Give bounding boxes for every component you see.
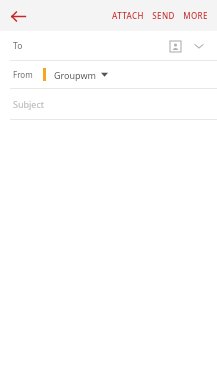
button[interactable]: ATTACH bbox=[108, 6, 148, 25]
staticText: SEND bbox=[152, 10, 175, 21]
button[interactable]: Expand recipients bbox=[189, 36, 209, 56]
button[interactable]: SEND bbox=[148, 6, 179, 25]
button[interactable]: Back bbox=[5, 3, 31, 29]
button[interactable]: Subject bbox=[0, 89, 217, 119]
staticText: From bbox=[13, 69, 33, 80]
button[interactable]: From bbox=[0, 61, 217, 88]
button[interactable]: Choose contact bbox=[165, 36, 185, 56]
staticText: MORE bbox=[183, 10, 208, 21]
staticText: Subject bbox=[13, 98, 45, 110]
button[interactable]: MORE bbox=[179, 6, 212, 25]
staticText: ATTACH bbox=[112, 10, 144, 21]
staticText: Groupwm bbox=[54, 69, 96, 81]
button[interactable]: To bbox=[0, 31, 217, 60]
staticText: To bbox=[13, 40, 23, 52]
